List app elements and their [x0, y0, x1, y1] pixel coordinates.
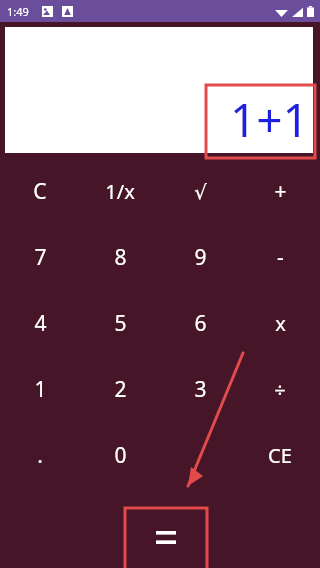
staticText: 1/x — [105, 178, 135, 205]
staticText: 2 — [114, 375, 127, 404]
staticText: 7 — [34, 243, 47, 272]
button[interactable]: ÷ — [240, 356, 320, 422]
staticText: 5 — [114, 309, 127, 338]
button[interactable]: CE — [240, 422, 320, 488]
staticText: 4 — [34, 309, 47, 338]
staticText: x — [275, 310, 286, 337]
button[interactable]: 1 — [0, 356, 80, 422]
button[interactable]: 9 — [160, 224, 240, 290]
staticText: C — [33, 177, 47, 206]
button[interactable]: x — [240, 290, 320, 356]
button[interactable]: + — [240, 158, 320, 224]
staticText: . — [37, 441, 43, 470]
staticText: 1+1 — [230, 88, 309, 151]
button[interactable]: 0 — [80, 422, 160, 488]
button[interactable]: 8 — [80, 224, 160, 290]
staticText: 8 — [114, 243, 127, 272]
button[interactable]: 3 — [160, 356, 240, 422]
button[interactable]: . — [0, 422, 80, 488]
staticText: 3 — [194, 375, 207, 404]
button[interactable]: 7 — [0, 224, 80, 290]
button[interactable]: √ — [160, 158, 240, 224]
button[interactable]: 5 — [80, 290, 160, 356]
button[interactable]: 2 — [80, 356, 160, 422]
staticText: 1:49 — [7, 4, 29, 19]
button[interactable]: - — [240, 224, 320, 290]
staticText: + — [274, 177, 287, 206]
staticText: 6 — [194, 309, 207, 338]
staticText: √ — [194, 180, 207, 203]
button[interactable]: C — [0, 158, 80, 224]
staticText: 9 — [194, 243, 207, 272]
staticText: 1 — [34, 375, 47, 404]
button[interactable]: 4 — [0, 290, 80, 356]
button[interactable]: Equals — [126, 508, 206, 566]
staticText: 0 — [114, 441, 127, 470]
staticText: ÷ — [274, 376, 286, 403]
button[interactable]: 1/x — [80, 158, 160, 224]
staticText: - — [277, 243, 284, 272]
button[interactable]: 6 — [160, 290, 240, 356]
staticText: CE — [268, 442, 292, 469]
button[interactable]: 1+1 — [5, 27, 313, 153]
